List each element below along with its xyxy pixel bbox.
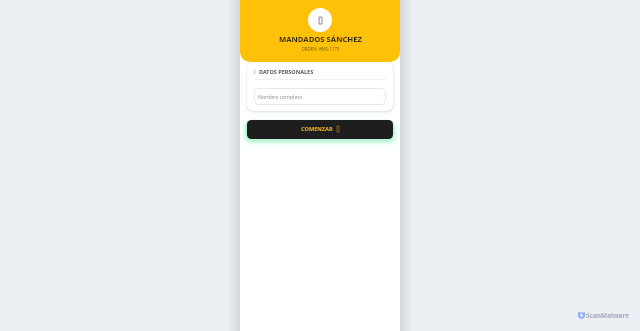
staticText: DATOS PERSONALES: [259, 68, 314, 75]
staticText: COMENZAR: [301, 125, 333, 133]
staticText: Nombre completo: [258, 93, 303, 100]
button[interactable]: COMENZAR: [247, 120, 393, 139]
staticText: ScanMalware: [586, 311, 630, 320]
staticText: MANDADOS SÁNCHEZ: [279, 34, 362, 44]
staticText: ORDEN: #MS-1175: [301, 46, 340, 52]
button[interactable]: Nombre completo: [254, 88, 386, 105]
